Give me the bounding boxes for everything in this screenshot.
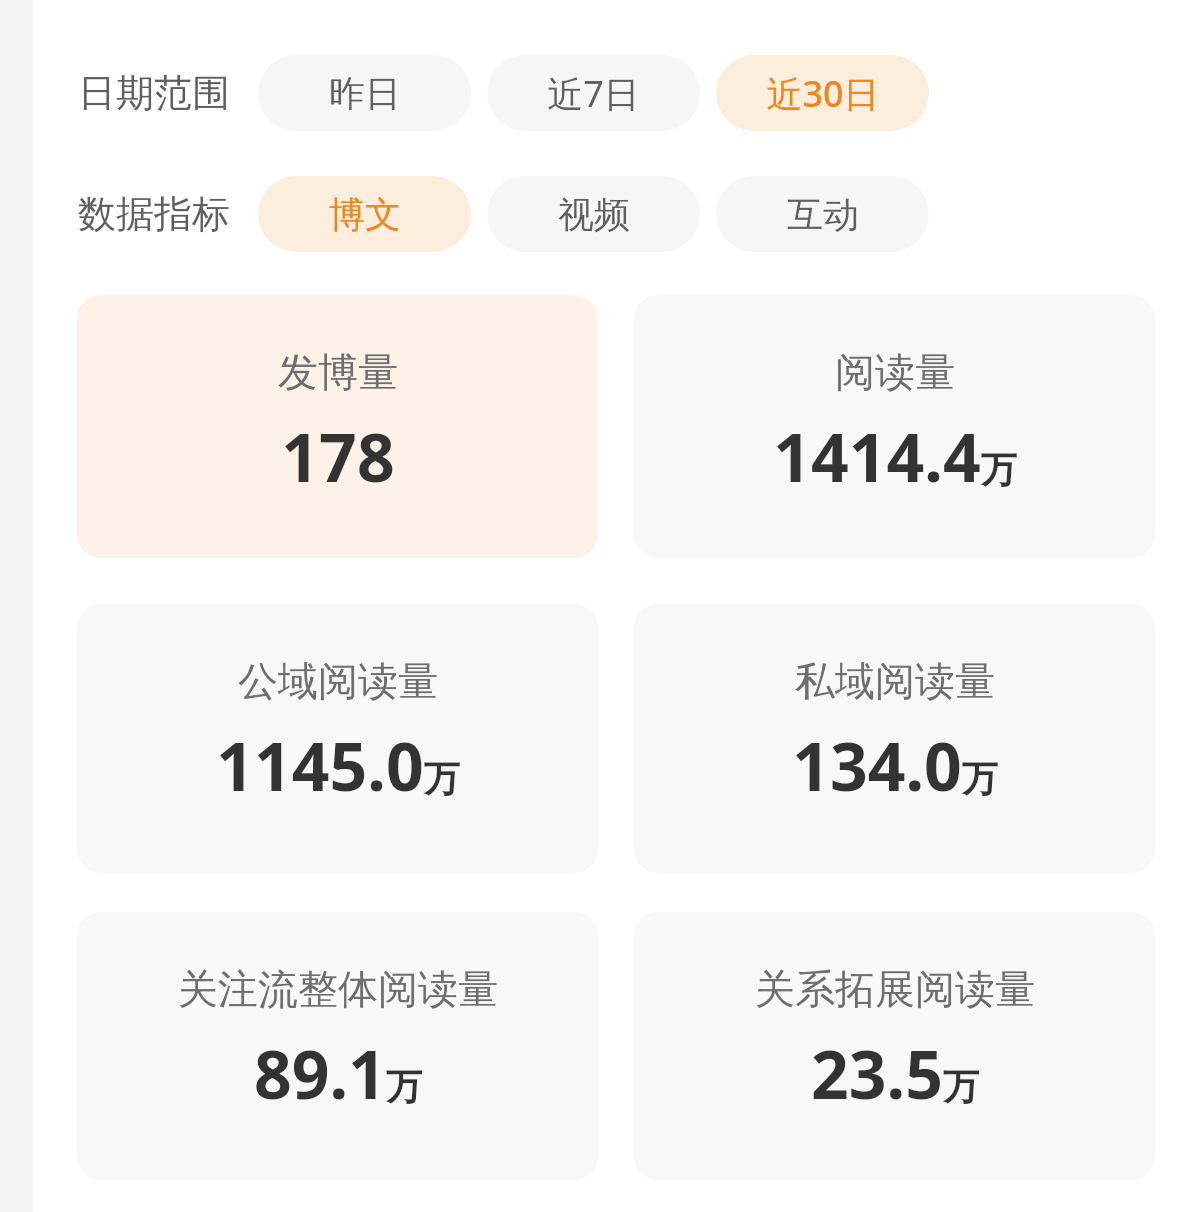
staticText: 互动 — [787, 192, 859, 237]
button[interactable]: 私域阅读量 — [634, 604, 1155, 873]
staticText: 1145.0万 — [216, 720, 460, 810]
staticText: 178 — [281, 411, 395, 501]
staticText: 134.0万 — [792, 720, 998, 810]
button[interactable]: 视频 — [487, 176, 700, 252]
button[interactable]: 博文 — [258, 176, 471, 252]
staticText: 23.5万 — [811, 1028, 979, 1118]
staticText: 近7日 — [547, 69, 640, 118]
button[interactable]: 近7日 — [487, 55, 700, 131]
staticText: 公域阅读量 — [238, 656, 438, 706]
staticText: 89.1万 — [254, 1028, 422, 1118]
button[interactable]: 公域阅读量 — [77, 604, 598, 873]
staticText: 发博量 — [278, 347, 398, 397]
staticText: 近30日 — [766, 69, 880, 118]
staticText: 视频 — [558, 192, 630, 237]
staticText: 私域阅读量 — [795, 656, 995, 706]
staticText: 阅读量 — [835, 347, 955, 397]
button[interactable]: 关注流整体阅读量 — [77, 912, 598, 1180]
button[interactable]: 近30日 — [716, 55, 929, 131]
button[interactable]: 阅读量 — [634, 295, 1155, 558]
staticText: 昨日 — [329, 71, 401, 116]
button[interactable]: 发博量 — [77, 295, 598, 558]
staticText: 数据指标 — [78, 190, 230, 238]
button[interactable]: 互动 — [716, 176, 929, 252]
staticText: 关注流整体阅读量 — [178, 964, 498, 1014]
button[interactable]: 关系拓展阅读量 — [634, 912, 1155, 1180]
staticText: 日期范围 — [78, 69, 230, 117]
button[interactable]: 昨日 — [258, 55, 471, 131]
staticText: 1414.4万 — [773, 411, 1017, 501]
staticText: 博文 — [329, 192, 401, 237]
staticText: 关系拓展阅读量 — [755, 964, 1035, 1014]
